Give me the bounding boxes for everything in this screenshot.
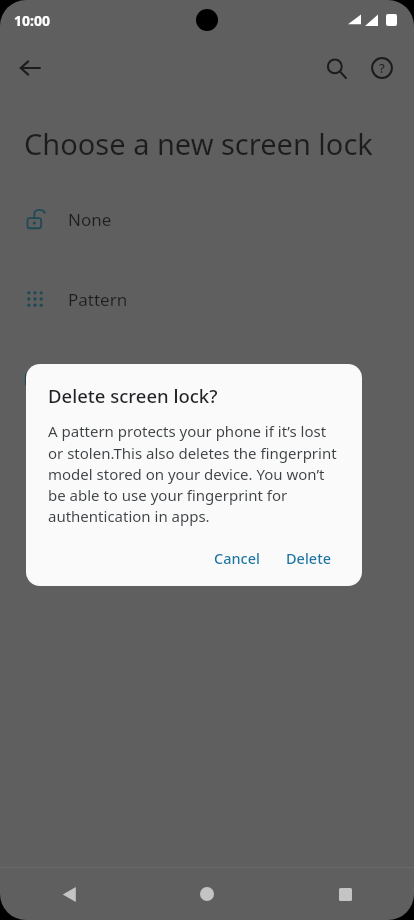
staticText: Cancel <box>214 548 260 568</box>
button[interactable]: PIN <box>0 359 414 399</box>
button[interactable]: Delete <box>278 540 340 576</box>
button[interactable]: Back <box>0 868 138 920</box>
staticText: Password <box>68 442 145 465</box>
button[interactable]: None <box>0 199 414 239</box>
staticText: Delete screen lock? <box>48 383 218 408</box>
button[interactable]: Password <box>0 433 414 473</box>
staticText: A pattern protects your phone if it’s lo… <box>48 421 340 526</box>
button[interactable]: Search <box>314 46 358 90</box>
button[interactable]: Pattern <box>0 279 414 319</box>
button[interactable]: Home <box>138 868 276 920</box>
button[interactable]: Cancel <box>206 540 268 576</box>
staticText: PIN <box>68 368 97 391</box>
staticText: Choose a new screen lock <box>24 124 373 163</box>
button[interactable]: Back <box>8 46 52 90</box>
button[interactable]: Help <box>360 46 404 90</box>
staticText: Delete <box>286 548 332 568</box>
staticText: Pattern <box>68 288 128 311</box>
staticText: 10:00 <box>14 11 50 30</box>
button[interactable]: Recent apps <box>276 868 414 920</box>
staticText: None <box>68 208 112 231</box>
staticText: ? <box>379 59 385 77</box>
